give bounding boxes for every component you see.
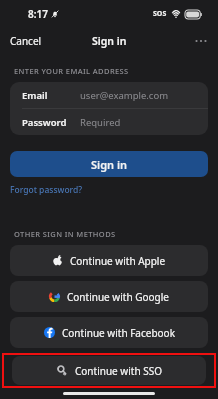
button[interactable]: Continue with Google: [10, 281, 208, 312]
staticText: Cancel: [10, 34, 42, 48]
staticText: Email: [22, 89, 48, 102]
staticText: Required: [80, 116, 121, 129]
button[interactable]: Continue with SSO: [12, 356, 206, 385]
button[interactable]: More options: [184, 33, 218, 49]
staticText: Continue with SSO: [75, 364, 162, 378]
button[interactable]: Cancel: [0, 31, 52, 51]
staticText: Continue with Google: [67, 290, 169, 304]
staticText: Continue with Apple: [70, 254, 166, 268]
staticText: user@example.com: [80, 89, 169, 102]
button[interactable]: Email: [10, 82, 208, 108]
button[interactable]: Sign in: [10, 151, 208, 177]
button[interactable]: Password: [10, 109, 208, 135]
button[interactable]: Continue with Apple: [10, 245, 208, 276]
staticText: 8:17: [28, 7, 48, 21]
staticText: Sign in: [91, 157, 128, 172]
button[interactable]: Continue with Facebook: [10, 317, 208, 348]
staticText: SOS: [153, 9, 167, 19]
staticText: Sign in: [92, 34, 127, 48]
staticText: Continue with Facebook: [62, 326, 175, 340]
staticText: Password: [22, 116, 67, 129]
button[interactable]: Forgot password?: [10, 183, 83, 197]
staticText: OTHER SIGN IN METHODS: [14, 229, 116, 239]
staticText: Forgot password?: [10, 184, 83, 196]
staticText: ENTER YOUR EMAIL ADDRESS: [14, 66, 129, 76]
